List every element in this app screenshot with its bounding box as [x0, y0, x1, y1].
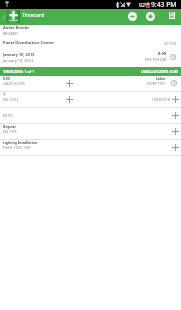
button[interactable]: Add LABOR HOURS — [66, 80, 73, 87]
staticText: Timecard — [22, 12, 44, 19]
staticText: January 10, 2013 — [3, 58, 34, 63]
staticText: ES1910 — [164, 41, 177, 46]
staticText: BROAND — [3, 31, 18, 36]
staticText: January 10, 2013 — [3, 52, 35, 57]
button[interactable]: Add NOTES — [172, 112, 179, 119]
staticText: 92% — [139, 1, 150, 8]
staticText: 8.00 — [158, 51, 167, 56]
staticText: Andre Brooks — [3, 25, 30, 30]
button[interactable]: Add PHASE CODE 1080 — [172, 144, 179, 151]
button[interactable]: Add PAY TYPE — [172, 128, 179, 135]
button[interactable]: Add CONDITION — [172, 96, 179, 103]
staticText: Regular — [3, 124, 16, 129]
button[interactable]: Remove entry — [128, 12, 137, 21]
button[interactable] — [0, 92, 91, 107]
staticText: CONDITION — [152, 98, 170, 102]
button[interactable]: Add PAY LEVEL — [66, 96, 73, 103]
button[interactable]: Lighting Installation — [0, 140, 181, 155]
button[interactable]: Regular — [0, 124, 181, 139]
button[interactable]: Add entry — [146, 12, 155, 21]
staticText: Labor — [156, 76, 166, 81]
button[interactable]: NOTES — [0, 108, 181, 123]
button[interactable]: Andre Brooks — [0, 25, 181, 67]
staticText: PHASE CODE 1080 — [3, 146, 31, 150]
staticText: PAY TYPE — [3, 130, 17, 134]
staticText: 1 — [3, 92, 5, 97]
staticText: 9:43 PM — [151, 0, 177, 9]
staticText: LABOR HOURS — [3, 82, 25, 86]
staticText: Puetz Distribution Center — [3, 40, 55, 45]
staticText: PAY LEVEL — [3, 98, 19, 102]
staticText: TIMECARD: 1 of 1 — [3, 69, 35, 74]
button[interactable]: Timecard app — [7, 10, 20, 23]
staticText: NOTES — [3, 114, 14, 118]
staticText: Lighting Installation — [3, 140, 38, 145]
staticText: HRS FOR DAY — [145, 58, 167, 62]
button[interactable]: Navigate up — [0, 9, 6, 25]
staticText: 0.00 — [3, 76, 10, 81]
staticText: ENTRY TYPE — [147, 82, 166, 86]
button[interactable] — [0, 76, 91, 91]
button[interactable]: Pick ENTRY TYPE — [171, 80, 177, 86]
staticText: UNALLOCATED: 8.00 — [141, 69, 178, 74]
button[interactable]: Save — [167, 11, 176, 20]
